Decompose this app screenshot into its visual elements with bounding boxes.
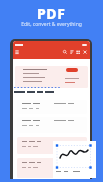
button[interactable] xyxy=(53,141,96,178)
staticText: Edit, convert & everything xyxy=(21,21,82,28)
button[interactable] xyxy=(17,137,87,154)
button[interactable] xyxy=(17,100,87,114)
button[interactable]: Convert xyxy=(66,68,78,72)
button[interactable]: Grid xyxy=(76,50,80,54)
button[interactable] xyxy=(17,117,87,133)
button[interactable]: Convert xyxy=(15,66,88,88)
staticText: PDF xyxy=(37,4,66,23)
button[interactable]: Search xyxy=(63,50,67,54)
button[interactable]: Sort xyxy=(70,50,74,54)
button[interactable]: Menu xyxy=(15,50,19,54)
button[interactable] xyxy=(17,158,87,178)
button[interactable]: More xyxy=(83,50,87,54)
